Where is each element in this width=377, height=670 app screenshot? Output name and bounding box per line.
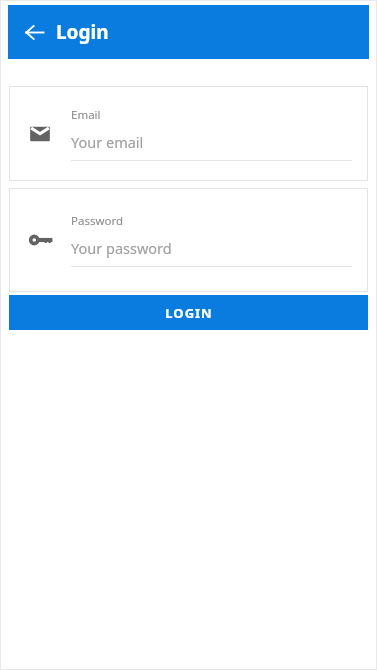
button[interactable]: Back bbox=[17, 15, 51, 49]
staticText: Login bbox=[56, 19, 109, 45]
button[interactable]: Password bbox=[9, 188, 368, 292]
button[interactable]: LOGIN bbox=[9, 295, 368, 330]
staticText: Your password bbox=[71, 238, 172, 258]
button[interactable]: Email bbox=[9, 86, 368, 181]
staticText: Email bbox=[71, 107, 101, 123]
staticText: Password bbox=[71, 213, 124, 229]
staticText: Your email bbox=[71, 132, 144, 152]
staticText: LOGIN bbox=[165, 304, 213, 322]
